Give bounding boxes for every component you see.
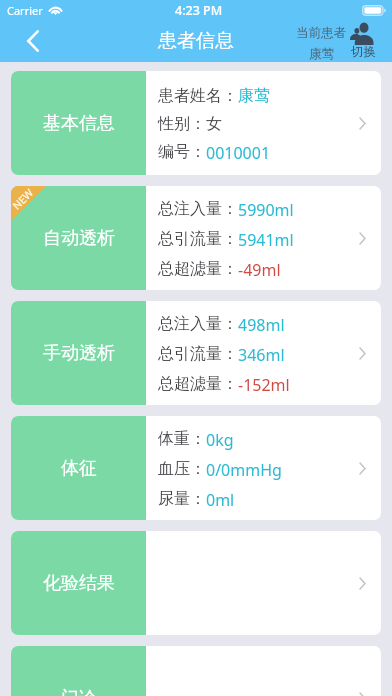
staticText: 总超滤量： <box>158 259 238 279</box>
staticText: 0ml <box>206 489 235 511</box>
staticText: 体重： <box>158 429 206 449</box>
staticText: 4:23 PM <box>175 2 223 19</box>
button[interactable]: 化验结果 <box>11 531 381 635</box>
staticText: 康莺 <box>309 46 334 62</box>
staticText: -152ml <box>238 374 290 396</box>
staticText: 尿量： <box>158 489 206 509</box>
staticText: 患者姓名： <box>158 86 238 106</box>
button[interactable]: 基本信息 <box>11 71 381 175</box>
staticText: 女 <box>206 114 222 134</box>
button[interactable]: 自动透析 <box>11 186 381 290</box>
staticText: 0/0mmHg <box>206 459 282 481</box>
staticText: NEW <box>11 186 36 212</box>
button[interactable]: 体征 <box>11 416 381 520</box>
staticText: 切换 <box>351 44 376 60</box>
staticText: 基本信息 <box>43 112 115 135</box>
staticText: 性别： <box>158 114 206 134</box>
staticText: 总引流量： <box>158 344 238 364</box>
button[interactable]: 手动透析 <box>11 301 381 405</box>
staticText: 总引流量： <box>158 229 238 249</box>
staticText: 5990ml <box>238 199 294 221</box>
staticText: 手动透析 <box>43 342 115 365</box>
staticText: -49ml <box>238 259 281 281</box>
staticText: 总超滤量： <box>158 374 238 394</box>
staticText: 5941ml <box>238 229 294 251</box>
staticText: Carrier <box>7 3 43 18</box>
staticText: 康莺 <box>238 86 270 106</box>
staticText: 患者信息 <box>158 29 234 53</box>
staticText: 346ml <box>238 344 285 366</box>
staticText: 化验结果 <box>43 572 115 595</box>
staticText: 体征 <box>61 457 97 480</box>
staticText: 自动透析 <box>43 227 115 250</box>
button[interactable]: 门诊 <box>11 646 381 696</box>
staticText: 门诊 <box>61 687 97 696</box>
staticText: 当前患者 <box>296 25 346 41</box>
staticText: 总注入量： <box>158 199 238 219</box>
staticText: 498ml <box>238 314 285 336</box>
staticText: 0010001 <box>206 142 271 164</box>
staticText: 编号： <box>158 142 206 162</box>
button[interactable]: 当前患者 <box>296 20 392 62</box>
staticText: 0kg <box>206 429 234 451</box>
staticText: 血压： <box>158 459 206 479</box>
button[interactable]: 返回 <box>0 20 58 62</box>
staticText: 总注入量： <box>158 314 238 334</box>
